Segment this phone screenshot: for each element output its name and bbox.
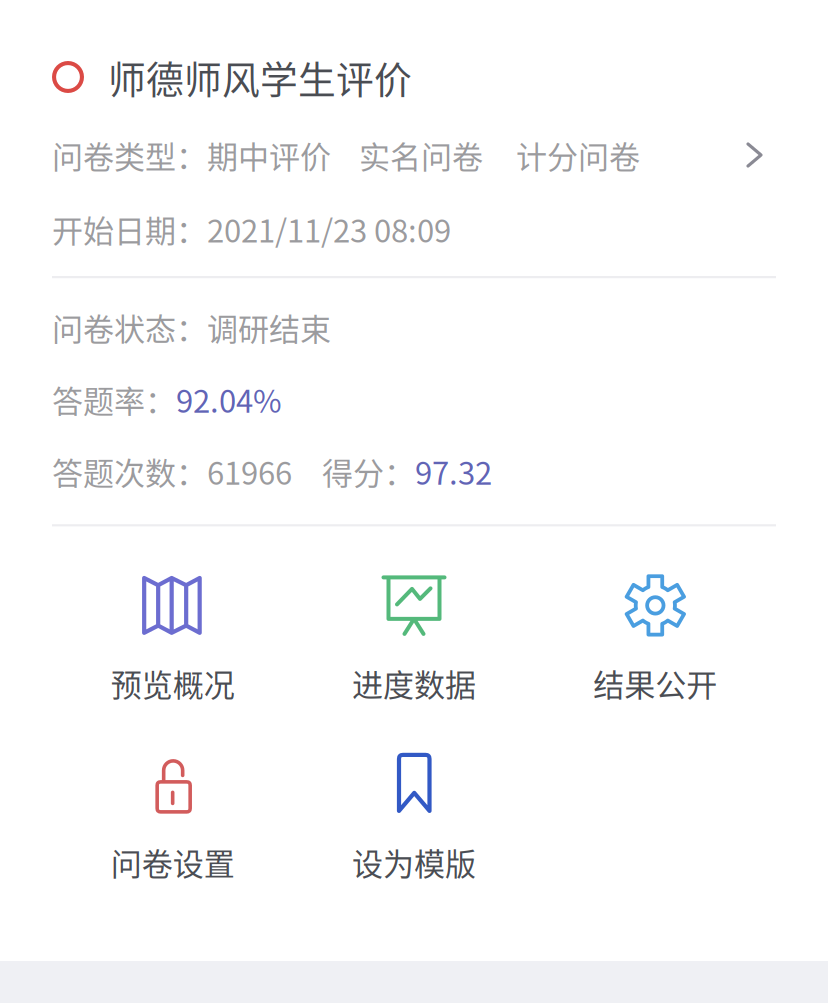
- staticText: 预览概况: [111, 660, 235, 705]
- staticText: 61966: [207, 449, 292, 494]
- staticText: 97.32: [415, 449, 492, 494]
- button[interactable]: 问卷设置: [52, 754, 293, 884]
- staticText: 师德师风学生评价: [108, 50, 412, 104]
- button[interactable]: 预览概况: [52, 575, 293, 705]
- staticText: 开始日期：: [52, 206, 207, 251]
- staticText: 问卷类型：期中评价: [52, 132, 331, 177]
- button[interactable]: 结果公开: [535, 575, 776, 705]
- staticText: 得分：: [322, 449, 415, 494]
- staticText: 92.04%: [176, 377, 282, 422]
- staticText: 进度数据: [352, 660, 476, 705]
- button[interactable]: 设为模版: [293, 754, 535, 884]
- button[interactable]: 进度数据: [293, 575, 535, 705]
- staticText: 结果公开: [593, 660, 717, 705]
- staticText: 答题次数：: [52, 449, 207, 494]
- staticText: 问卷设置: [111, 839, 235, 884]
- staticText: 问卷状态：: [52, 305, 207, 350]
- staticText: 实名问卷: [359, 132, 483, 177]
- staticText: 计分问卷: [516, 132, 640, 177]
- staticText: 2021/11/23 08:09: [207, 206, 451, 251]
- staticText: 设为模版: [352, 839, 476, 884]
- staticText: 调研结束: [207, 305, 331, 350]
- staticText: 答题率：: [52, 377, 176, 422]
- button[interactable]: 问卷类型：期中评价: [52, 126, 776, 184]
